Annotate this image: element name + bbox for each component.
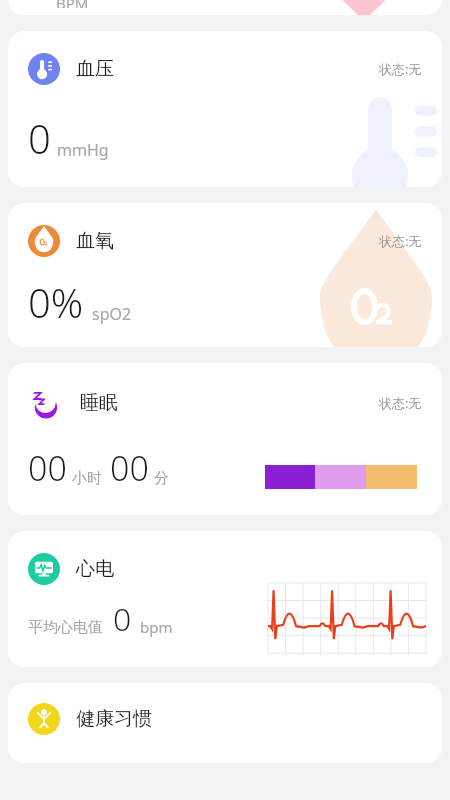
staticText: 状态:无 xyxy=(379,60,422,78)
staticText: 睡眠 xyxy=(80,391,118,415)
staticText: 0 xyxy=(113,597,132,641)
staticText: 分 xyxy=(154,469,169,488)
staticText: 0% xyxy=(28,275,84,329)
staticText: 心电 xyxy=(76,557,114,581)
other: Health habits xyxy=(28,703,60,735)
staticText: spO2 xyxy=(92,303,132,325)
other: ECG xyxy=(28,553,60,585)
button[interactable]: Health habits xyxy=(8,683,442,763)
staticText: mmHg xyxy=(57,139,109,161)
staticText: 0 xyxy=(28,111,51,165)
button[interactable]: Blood pressure xyxy=(8,31,442,187)
button[interactable]: Sleep xyxy=(8,363,442,515)
staticText: 状态:无 xyxy=(379,394,422,412)
staticText: 00 xyxy=(110,445,149,491)
staticText: 血压 xyxy=(76,57,114,81)
button[interactable]: ECG xyxy=(8,531,442,667)
staticText: 小时 xyxy=(72,469,102,488)
other: Blood pressure xyxy=(28,53,60,85)
staticText: 状态:无 xyxy=(379,232,422,250)
other: Sleep xyxy=(28,385,64,421)
staticText: 00 xyxy=(28,445,67,491)
staticText: bpm xyxy=(140,617,173,637)
staticText: 血氧 xyxy=(76,229,114,253)
staticText: BPM xyxy=(56,0,89,8)
button[interactable]: BPM xyxy=(8,0,442,15)
staticText: 健康习惯 xyxy=(76,707,152,731)
staticText: 平均心电值 xyxy=(28,618,103,637)
other: Blood oxygen xyxy=(28,225,60,257)
button[interactable]: Blood oxygen xyxy=(8,203,442,347)
